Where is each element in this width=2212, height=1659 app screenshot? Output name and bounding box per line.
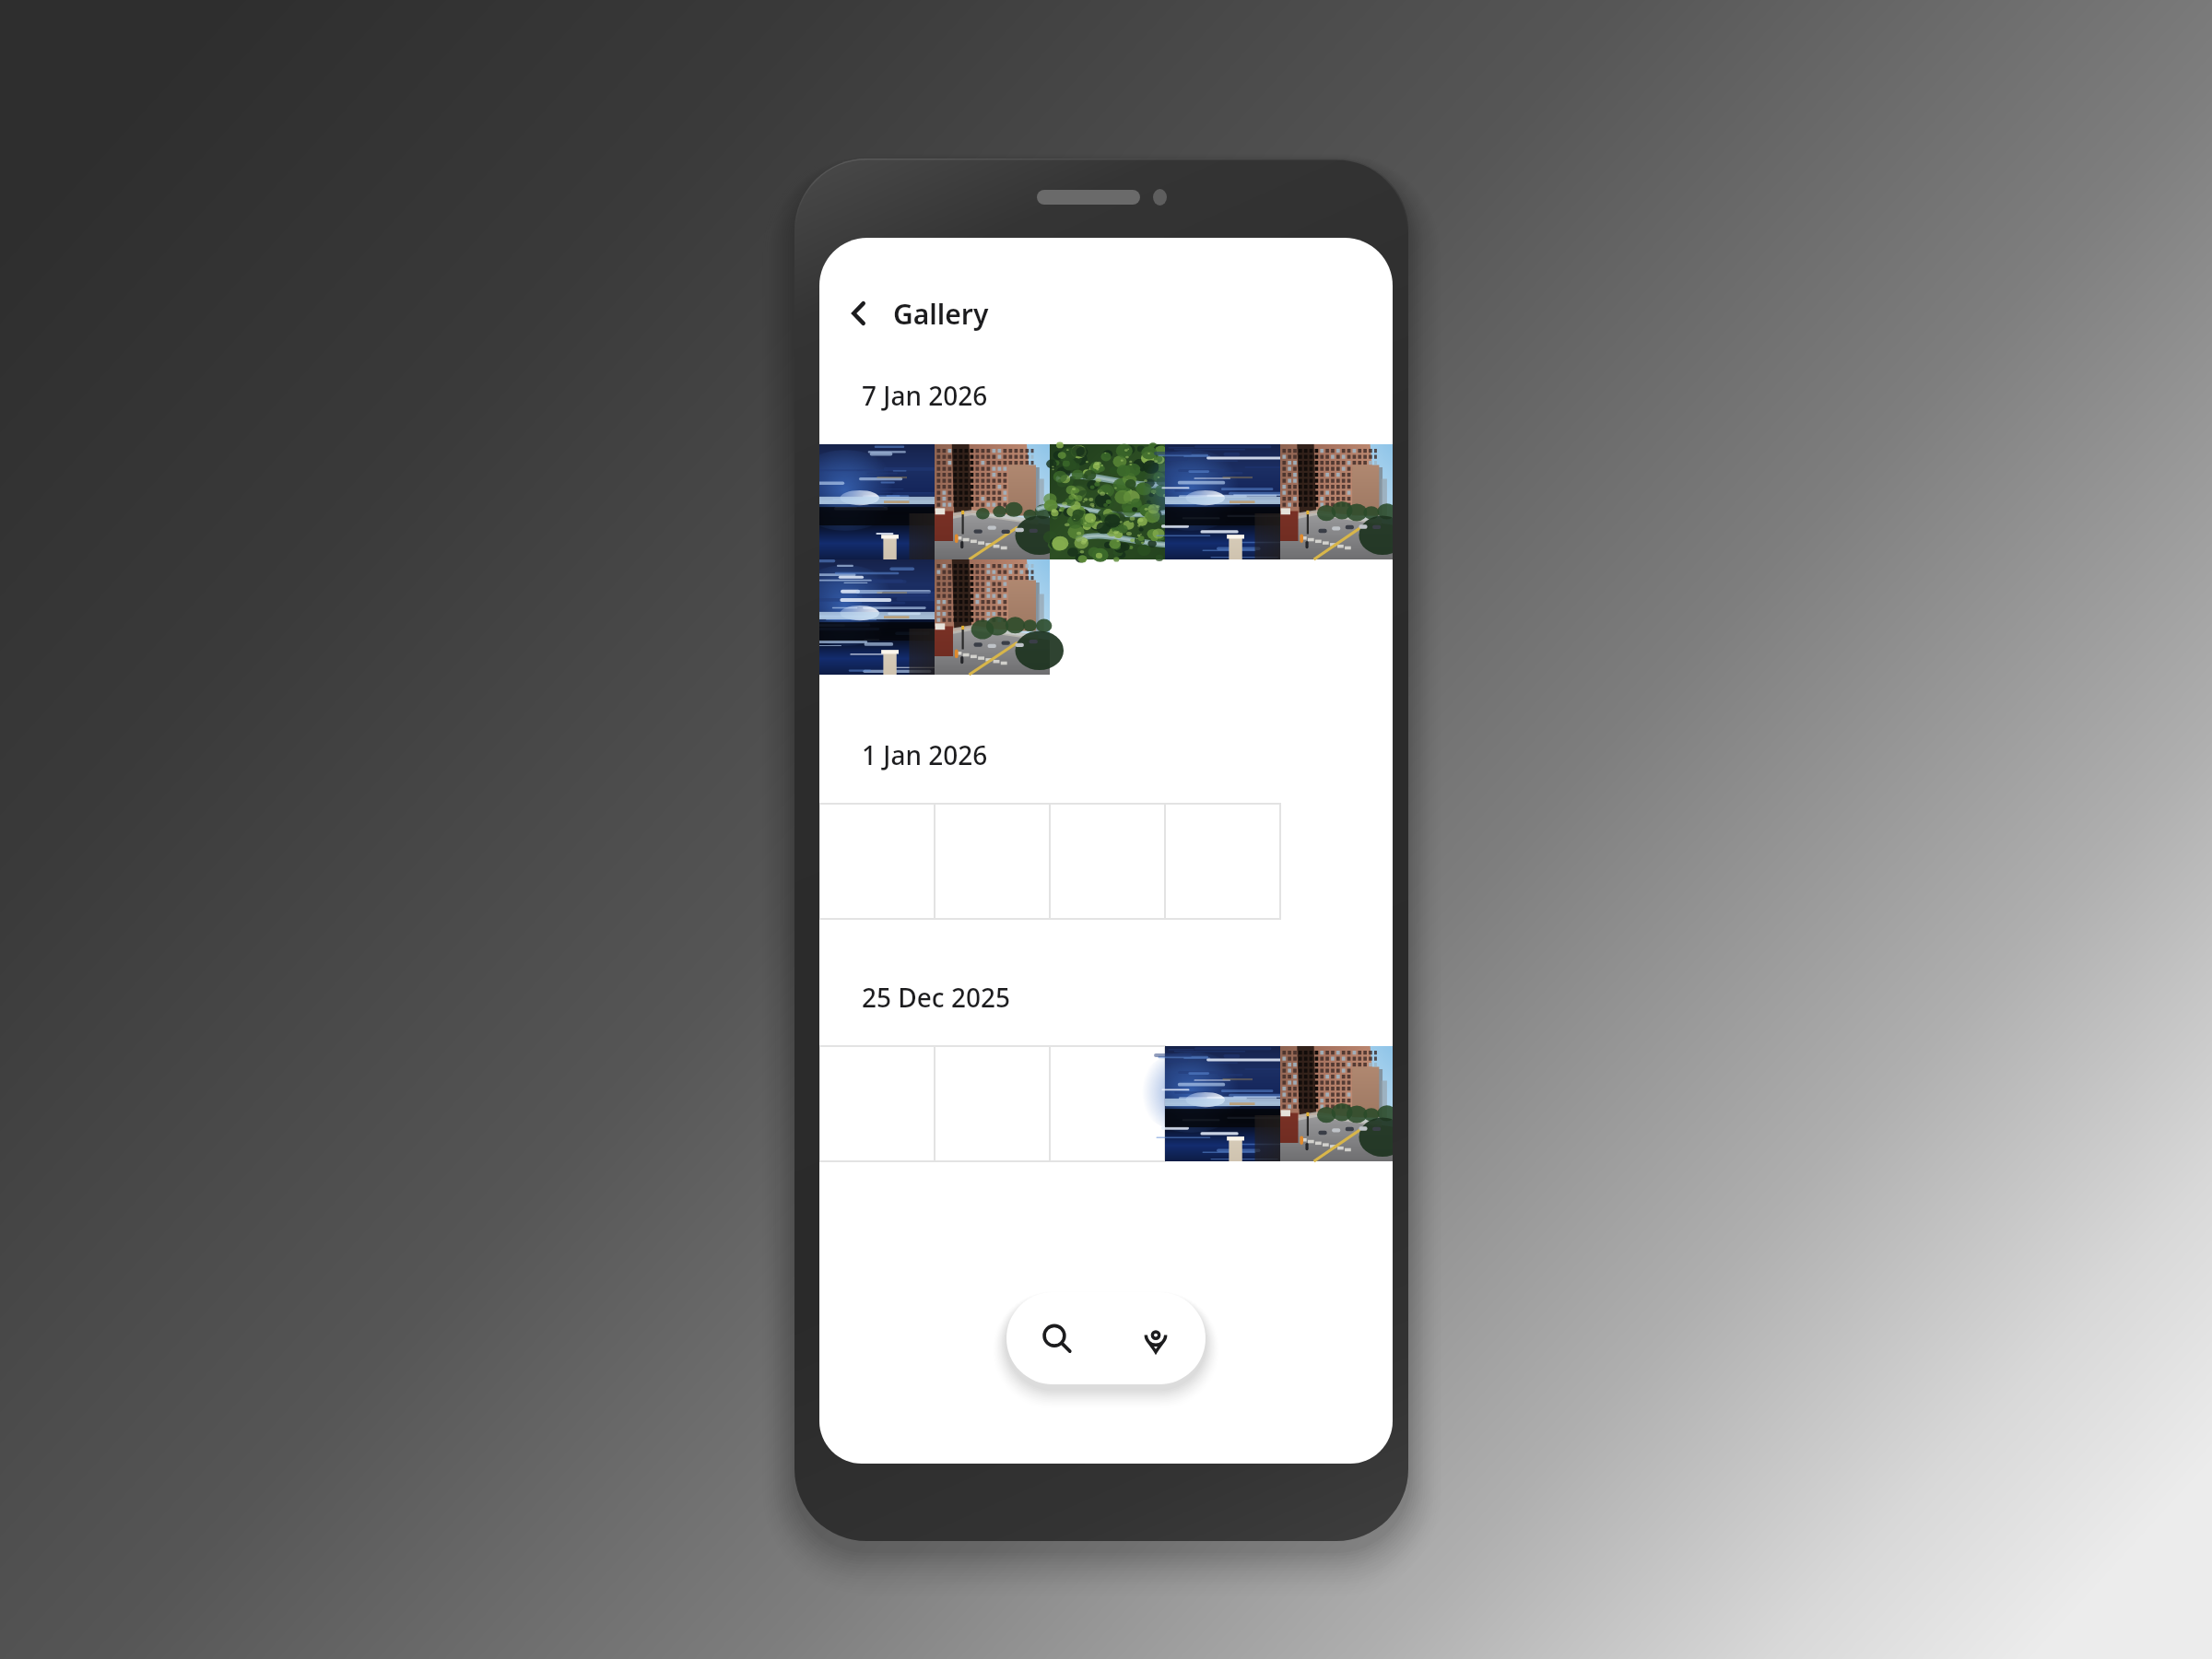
button[interactable]: Photo placeholder (819, 804, 935, 919)
button[interactable]: Photo (1050, 444, 1165, 559)
staticText: 25 Dec 2025 (862, 980, 1010, 1015)
staticText: 1 Jan 2026 (862, 737, 988, 772)
button[interactable]: Photo (819, 444, 935, 559)
button[interactable]: Photo placeholder (935, 804, 1050, 919)
staticText: Gallery (893, 295, 989, 333)
button[interactable]: Photo (1280, 444, 1393, 559)
button[interactable]: Back (834, 288, 884, 338)
button[interactable]: Photo placeholder (819, 1046, 935, 1161)
staticText: 7 Jan 2026 (862, 378, 988, 413)
button[interactable]: Photo placeholder (1165, 804, 1280, 919)
button[interactable]: Photo (1280, 1046, 1393, 1161)
button[interactable]: Photo (1165, 444, 1280, 559)
button[interactable]: Location (1106, 1292, 1206, 1384)
button[interactable]: Photo (1165, 1046, 1280, 1161)
button[interactable]: Photo (819, 559, 935, 675)
button[interactable]: Search (1006, 1292, 1106, 1384)
button[interactable]: Photo placeholder (935, 1046, 1050, 1161)
button[interactable]: Photo placeholder (1050, 804, 1165, 919)
button[interactable]: Photo (935, 559, 1050, 675)
button[interactable]: Photo (935, 444, 1050, 559)
button[interactable]: Photo placeholder (1050, 1046, 1165, 1161)
